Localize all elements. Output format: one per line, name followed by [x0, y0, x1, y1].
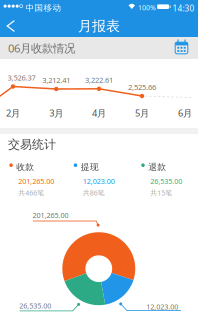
staticText: 26,535.00 [19, 301, 51, 311]
staticText: 交易统计 [8, 137, 56, 152]
button[interactable]: Back [0, 15, 24, 37]
staticText: 退款 [148, 162, 166, 173]
staticText: 共86笔 [83, 188, 105, 197]
staticText: 100% [138, 3, 156, 12]
staticText: 4月 [92, 107, 106, 119]
staticText: 14:30 [172, 3, 194, 14]
staticText: 中国移动 [26, 3, 62, 13]
staticText: 5月 [135, 107, 149, 119]
staticText: 提现 [81, 162, 99, 173]
staticText: 月报表 [78, 17, 120, 35]
staticText: 6月 [178, 107, 192, 119]
staticText: 12,023.00 [146, 302, 178, 312]
staticText: 收款 [16, 162, 34, 173]
staticText: 3,212.41 [42, 75, 70, 85]
staticText: 3,526.37 [7, 72, 35, 83]
staticText: 201,265.00 [18, 176, 54, 186]
staticText: 3,222.61 [85, 75, 113, 85]
staticText: 06月收款情况 [8, 40, 75, 56]
staticText: 共15笔 [150, 188, 172, 197]
staticText: 3月 [49, 107, 63, 119]
staticText: 26,535.00 [150, 176, 182, 186]
staticText: 2月 [6, 107, 20, 119]
staticText: 201,265.00 [33, 210, 69, 220]
staticText: 12,023.00 [83, 176, 115, 186]
staticText: 2,525.66 [128, 82, 156, 92]
button[interactable]: Choose month [173, 40, 190, 56]
staticText: 共466笔 [18, 188, 44, 197]
